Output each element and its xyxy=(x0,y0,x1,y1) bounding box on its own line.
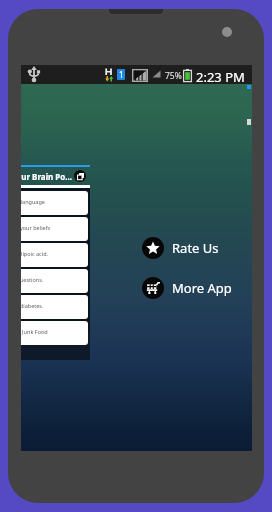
staticText: Ask questions. xyxy=(21,276,44,283)
button[interactable]: Learn a language xyxy=(21,191,88,215)
staticText: Improve Your Brain Po... xyxy=(21,171,67,182)
button[interactable]: Skip the Junk Food xyxy=(21,321,88,345)
staticText: More App xyxy=(172,279,232,297)
staticText: Take alpha lipoic acid. xyxy=(21,250,49,257)
staticText: Skip the Junk Food xyxy=(21,328,48,335)
button[interactable]: Take alpha lipoic acid. xyxy=(21,243,88,267)
staticText: 2:23 PM xyxy=(196,68,245,86)
other: Rate Us xyxy=(142,237,164,259)
button[interactable]: Ask questions. xyxy=(21,269,88,293)
staticText: 1 xyxy=(119,69,124,80)
staticText: Question your beliefs xyxy=(21,224,51,231)
button[interactable]: More App xyxy=(142,277,232,299)
button[interactable]: Avoid diabetes. xyxy=(21,295,88,319)
staticText: Rate Us xyxy=(172,239,219,257)
button[interactable]: Rate Us xyxy=(142,237,219,259)
staticText: Learn a language xyxy=(21,198,45,205)
button[interactable]: Question your beliefs xyxy=(21,217,88,241)
staticText: Avoid diabetes. xyxy=(21,302,44,309)
other: More App xyxy=(142,277,164,299)
staticText: 75% xyxy=(165,70,182,82)
button[interactable]: Open list xyxy=(74,170,86,182)
